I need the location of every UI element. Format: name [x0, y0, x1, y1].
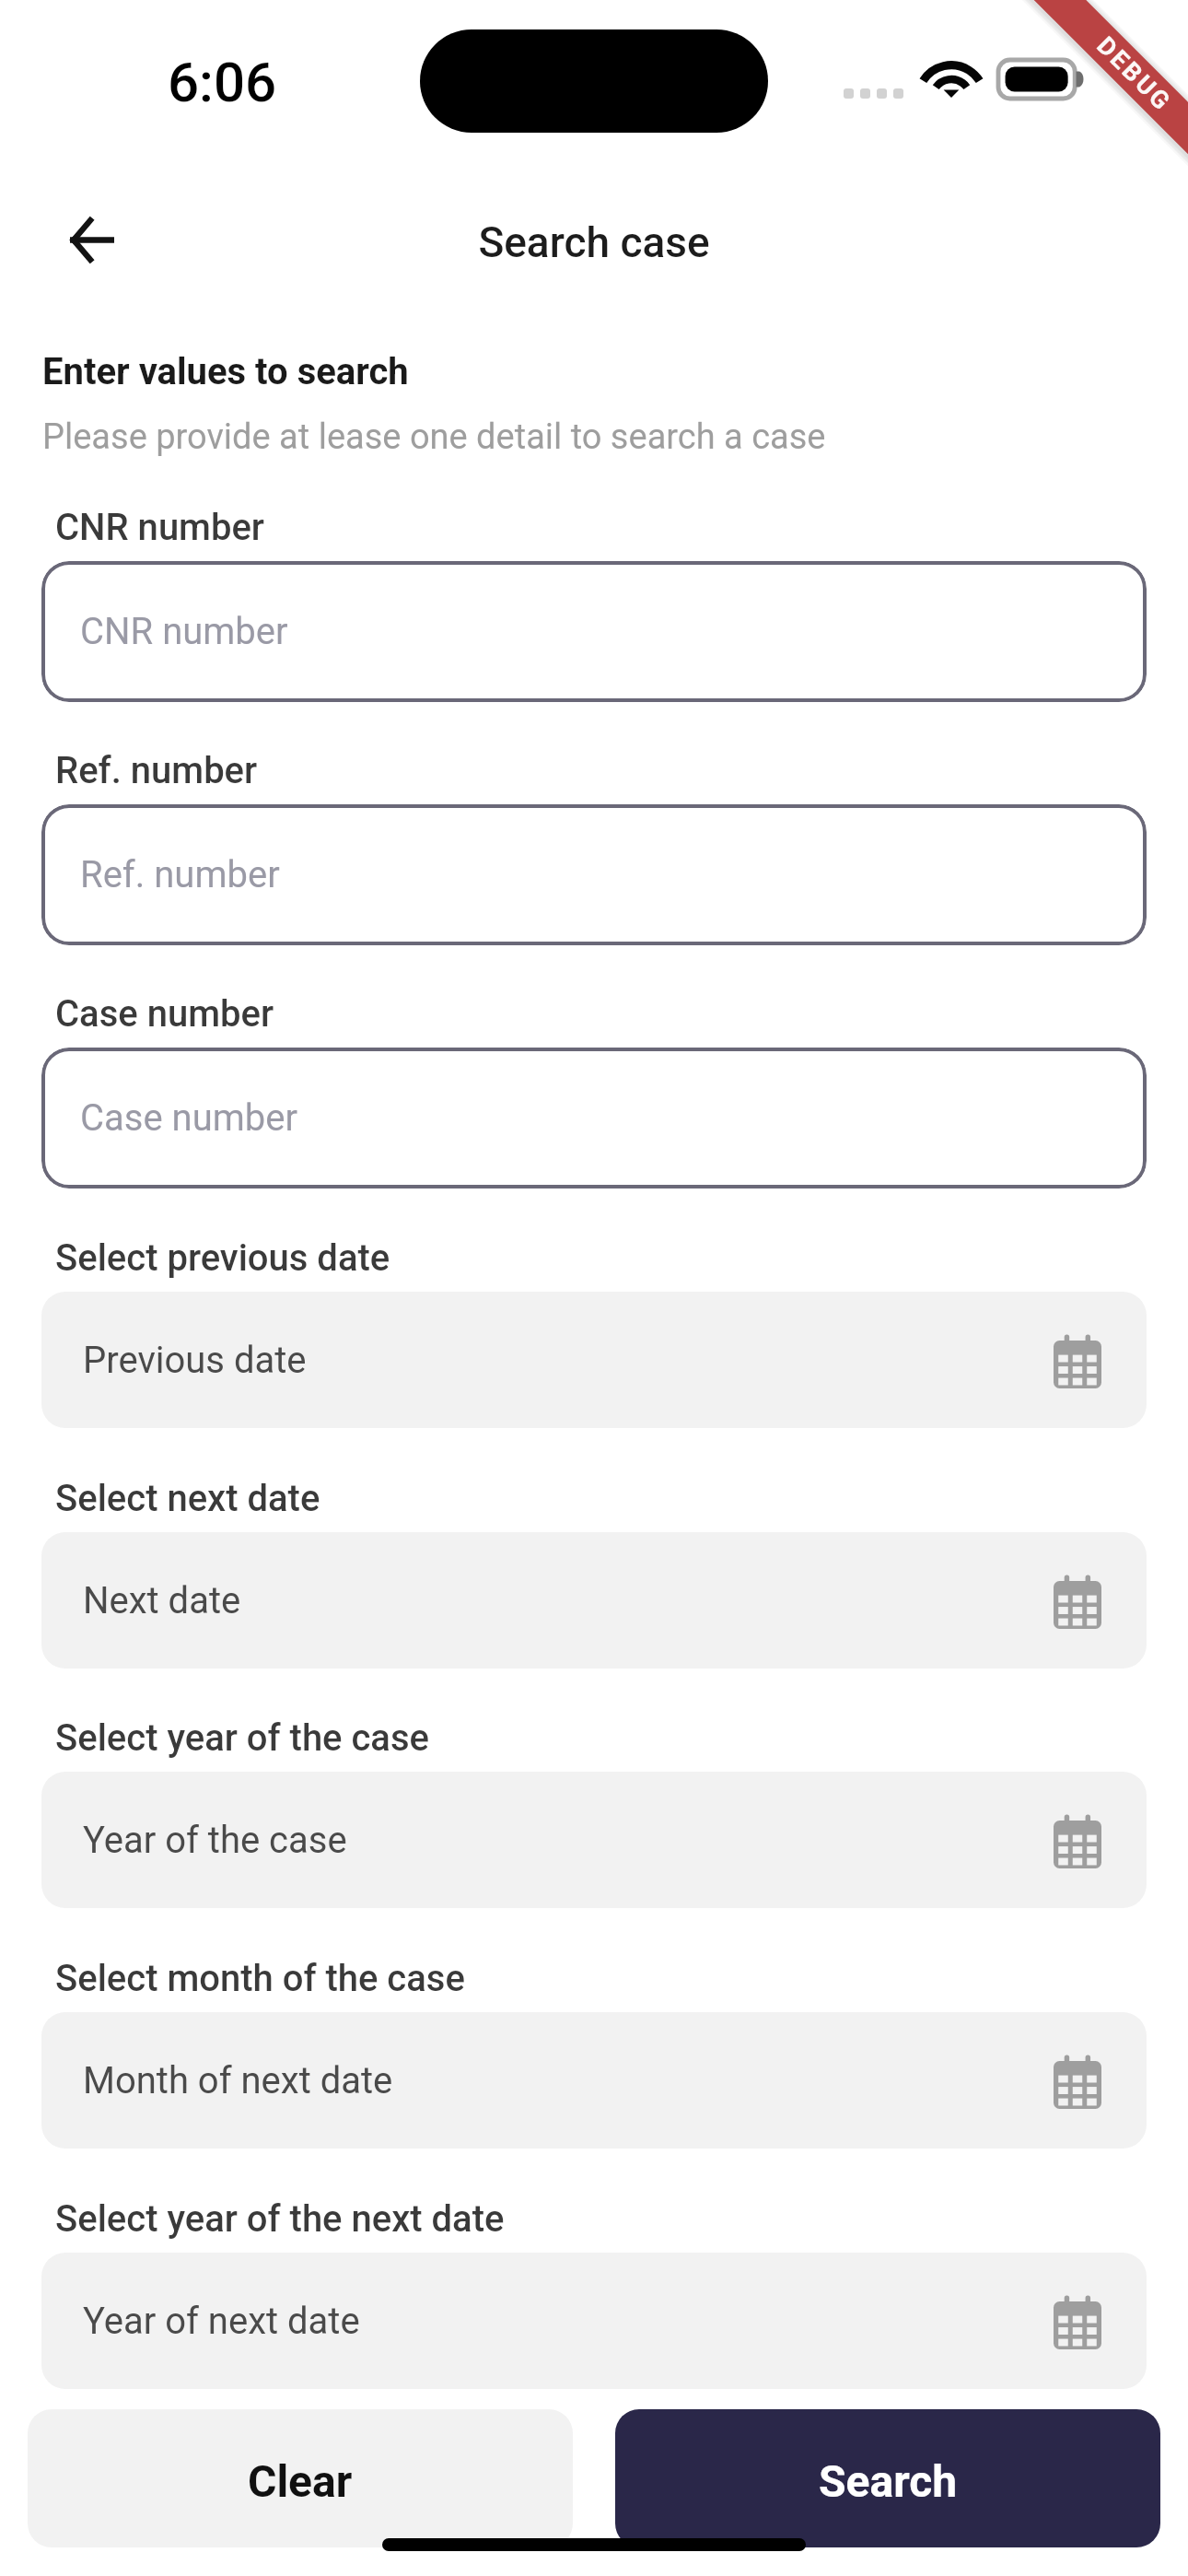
staticText: Please provide at lease one detail to se…: [42, 416, 826, 458]
button[interactable]: Clear: [28, 2409, 573, 2547]
staticText: Ref. number: [55, 749, 258, 792]
staticText: Ref. number: [80, 853, 280, 896]
staticText: Select year of the next date: [55, 2197, 505, 2241]
button[interactable]: Month of next date: [41, 2012, 1147, 2149]
button[interactable]: Ref. number: [41, 804, 1147, 945]
staticText: Search: [819, 2455, 958, 2507]
button[interactable]: Back: [46, 193, 138, 286]
staticText: Next date: [83, 1579, 1054, 1622]
staticText: Previous date: [83, 1339, 1054, 1382]
staticText: Select next date: [55, 1477, 320, 1520]
staticText: Select previous date: [55, 1236, 390, 1280]
staticText: DEBUG: [1091, 31, 1178, 118]
button[interactable]: Search: [615, 2409, 1160, 2547]
staticText: CNR number: [80, 610, 288, 653]
staticText: CNR number: [55, 506, 265, 549]
staticText: Clear: [248, 2455, 353, 2507]
staticText: Case number: [80, 1096, 298, 1140]
staticText: Case number: [55, 992, 274, 1036]
button[interactable]: Case number: [41, 1048, 1147, 1188]
staticText: Year of the case: [83, 1819, 1054, 1862]
button[interactable]: Year of next date: [41, 2253, 1147, 2389]
button[interactable]: Next date: [41, 1532, 1147, 1669]
button[interactable]: Previous date: [41, 1292, 1147, 1428]
staticText: Month of next date: [83, 2059, 1054, 2102]
staticText: 6:06: [168, 50, 277, 114]
staticText: Select year of the case: [55, 1716, 429, 1760]
staticText: Select month of the case: [55, 1957, 465, 2000]
staticText: Year of next date: [83, 2300, 1054, 2343]
staticText: Search case: [41, 217, 1147, 267]
staticText: Enter values to search: [42, 350, 409, 393]
button[interactable]: CNR number: [41, 561, 1147, 702]
button[interactable]: Year of the case: [41, 1772, 1147, 1908]
